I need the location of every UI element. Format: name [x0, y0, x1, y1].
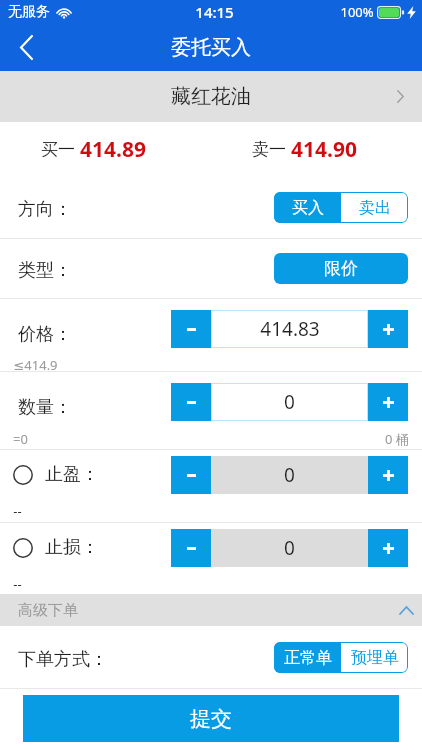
- button[interactable]: Increase: [368, 383, 408, 421]
- button[interactable]: 限价: [274, 253, 408, 284]
- button[interactable]: Increase: [368, 456, 408, 494]
- button[interactable]: Decrease: [171, 529, 211, 567]
- staticText: 正常单: [284, 648, 332, 668]
- staticText: 价格：: [18, 323, 72, 346]
- button[interactable]: Decrease: [171, 383, 211, 421]
- staticText: 无服务: [8, 3, 50, 21]
- button[interactable]: Increase: [368, 310, 408, 348]
- staticText: 下单方式：: [18, 648, 108, 671]
- button[interactable]: 高级下单: [0, 594, 422, 626]
- staticText: 100%: [340, 3, 374, 21]
- staticText: 预埋单: [351, 648, 399, 668]
- staticText: 方向：: [18, 198, 72, 221]
- staticText: 数量：: [18, 396, 72, 419]
- staticText: 止盈：: [45, 463, 99, 486]
- button[interactable]: 0: [211, 383, 368, 421]
- staticText: 类型：: [18, 259, 72, 282]
- staticText: 高级下单: [18, 601, 78, 620]
- staticText: 藏红花油: [171, 84, 251, 109]
- staticText: 止损：: [45, 536, 99, 559]
- staticText: 414.83: [260, 316, 320, 342]
- button[interactable]: 买入: [274, 192, 341, 223]
- button[interactable]: Decrease: [171, 310, 211, 348]
- staticText: 0: [284, 462, 295, 488]
- staticText: 14:15: [195, 2, 234, 22]
- staticText: 提交: [190, 706, 232, 732]
- button[interactable]: 预埋单: [341, 642, 408, 673]
- button[interactable]: 藏红花油: [0, 71, 422, 122]
- button[interactable]: 正常单: [274, 642, 341, 673]
- staticText: =0: [13, 430, 28, 448]
- staticText: 414.90: [291, 135, 357, 164]
- button[interactable]: 卖出: [341, 192, 408, 223]
- button[interactable]: 提交: [23, 695, 399, 742]
- button[interactable]: 414.83: [211, 310, 368, 348]
- staticText: ≤414.9: [13, 356, 58, 374]
- staticText: 0: [284, 535, 295, 561]
- button[interactable]: 止盈：: [12, 464, 34, 486]
- staticText: 0 桶: [385, 430, 409, 448]
- button[interactable]: Back: [0, 24, 52, 71]
- staticText: 0: [284, 389, 295, 415]
- button[interactable]: 0: [211, 529, 368, 567]
- button[interactable]: 止损：: [12, 537, 34, 559]
- staticText: 限价: [324, 258, 358, 279]
- staticText: 卖一: [252, 139, 286, 160]
- staticText: 414.89: [80, 135, 146, 164]
- button[interactable]: Increase: [368, 529, 408, 567]
- button[interactable]: Decrease: [171, 456, 211, 494]
- staticText: 卖出: [359, 198, 391, 218]
- staticText: 买一: [41, 139, 75, 160]
- staticText: --: [13, 575, 22, 593]
- staticText: 买入: [292, 198, 324, 218]
- button[interactable]: 0: [211, 456, 368, 494]
- staticText: --: [13, 502, 22, 520]
- staticText: 委托买入: [171, 35, 251, 60]
